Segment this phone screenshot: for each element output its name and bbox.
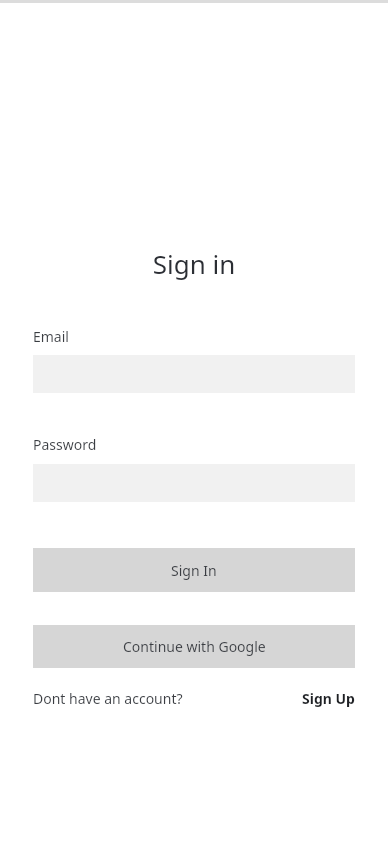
button[interactable]: Continue with Google — [33, 625, 355, 668]
staticText: Sign In — [171, 561, 217, 580]
staticText: Continue with Google — [123, 637, 266, 656]
button[interactable]: Sign Up — [302, 689, 355, 708]
staticText: Sign Up — [302, 689, 355, 708]
staticText: Dont have an account? — [33, 689, 183, 708]
staticText: Sign in — [0, 246, 388, 281]
staticText: Password — [33, 435, 97, 454]
staticText: Email — [33, 327, 69, 346]
button[interactable]: Sign In — [33, 548, 355, 592]
